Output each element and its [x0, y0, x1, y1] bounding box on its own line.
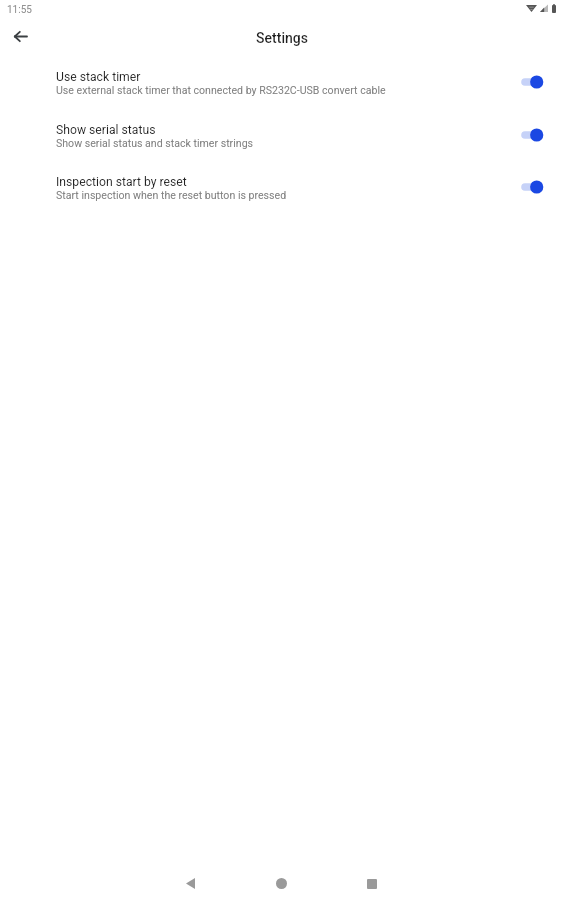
- button[interactable]: Toggle setting: [520, 179, 544, 195]
- staticText: Settings: [256, 30, 308, 46]
- staticText: Show serial status: [56, 123, 156, 137]
- button[interactable]: Toggle setting: [520, 127, 544, 143]
- staticText: Use external stack timer that connected …: [56, 84, 386, 96]
- button[interactable]: Back: [176, 869, 205, 898]
- button[interactable]: Toggle setting: [520, 74, 544, 90]
- button[interactable]: Use stack timer: [0, 64, 563, 116]
- staticText: Use stack timer: [56, 70, 141, 84]
- staticText: Show serial status and stack timer strin…: [56, 137, 254, 149]
- button[interactable]: Inspection start by reset: [0, 169, 563, 221]
- staticText: 11:55: [7, 4, 32, 16]
- button[interactable]: Show serial status: [0, 117, 563, 169]
- staticText: Inspection start by reset: [56, 175, 187, 189]
- button[interactable]: Navigate up: [7, 23, 33, 49]
- button[interactable]: Home: [267, 869, 296, 898]
- button[interactable]: Recent apps: [357, 869, 386, 898]
- staticText: Start inspection when the reset button i…: [56, 189, 287, 201]
